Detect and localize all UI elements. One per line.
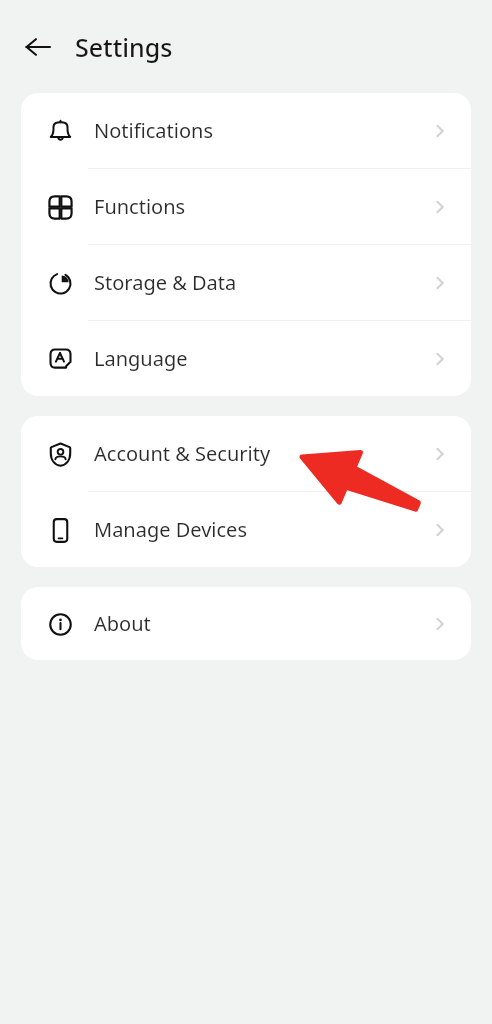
staticText: Notifications [94,117,429,144]
button[interactable]: Account & Security [21,416,471,491]
staticText: Manage Devices [94,516,429,543]
staticText: Language [94,345,429,372]
staticText: Storage & Data [94,269,429,296]
button[interactable]: Functions [21,169,471,244]
button[interactable]: Storage & Data [21,245,471,320]
button[interactable]: Back [20,29,56,65]
button[interactable]: About [21,587,471,660]
staticText: About [94,610,429,637]
button[interactable]: Manage Devices [21,492,471,567]
staticText: Settings [75,30,173,64]
button[interactable]: Language [21,321,471,396]
staticText: Account & Security [94,440,429,467]
staticText: Functions [94,193,429,220]
button[interactable]: Notifications [21,93,471,168]
